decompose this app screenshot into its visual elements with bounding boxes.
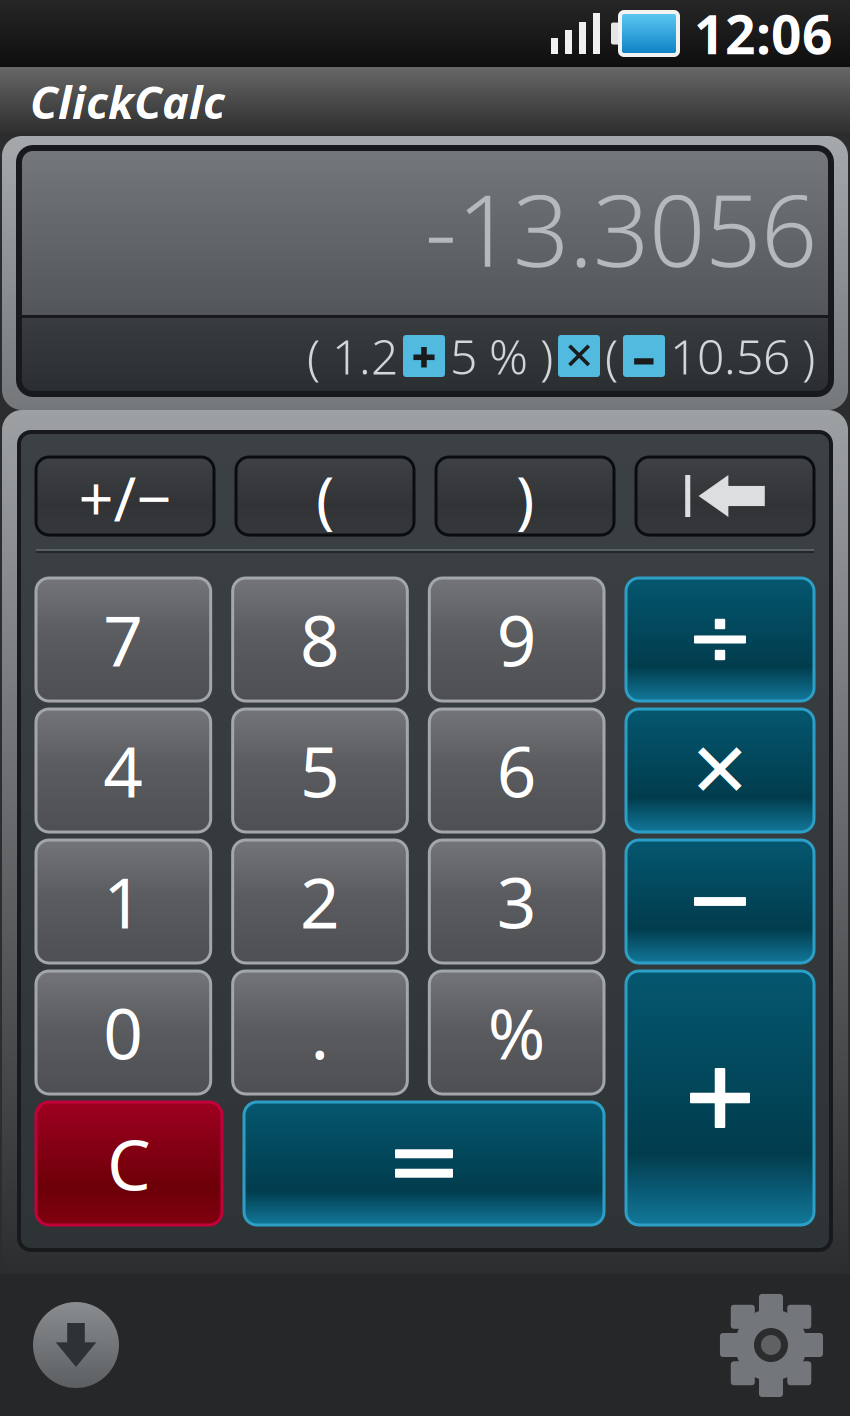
button[interactable]: Backspace (636, 457, 814, 535)
button[interactable]: 7 (36, 578, 211, 701)
staticText: ClickCalc (30, 71, 225, 132)
button[interactable]: 1 (36, 840, 211, 963)
staticText: – (632, 326, 655, 386)
staticText: 0 (103, 986, 143, 1079)
button[interactable]: Multiply (626, 709, 814, 832)
staticText: 1 (103, 855, 143, 948)
staticText: 6 (497, 724, 537, 817)
staticText: 2 (300, 855, 340, 948)
button[interactable]: 8 (233, 578, 407, 701)
button[interactable]: ( (236, 457, 414, 535)
staticText: 4 (103, 724, 143, 817)
button[interactable]: C (36, 1102, 222, 1225)
staticText: +/− (78, 457, 171, 535)
button[interactable]: Download (24, 1293, 128, 1397)
staticText: ✕ (688, 728, 751, 813)
button[interactable]: ) (436, 457, 614, 535)
button[interactable]: +/− (36, 457, 214, 535)
staticText: 8 (300, 593, 340, 686)
staticText: 10.56 ) (670, 324, 815, 388)
button[interactable]: Divide (626, 578, 814, 701)
staticText: 5 (300, 724, 340, 817)
button[interactable]: Settings (716, 1290, 826, 1400)
button[interactable]: 9 (429, 578, 604, 701)
staticText: ( (316, 457, 334, 535)
staticText: ✕ (563, 335, 594, 377)
staticText: + (411, 328, 436, 384)
button[interactable]: 3 (429, 840, 604, 963)
button[interactable]: 4 (36, 709, 211, 832)
button[interactable]: 6 (429, 709, 604, 832)
staticText: . (310, 986, 329, 1079)
button[interactable]: Plus (626, 971, 814, 1225)
staticText: C (107, 1117, 151, 1210)
button[interactable]: Equals (244, 1102, 604, 1225)
button[interactable]: % (429, 971, 604, 1094)
staticText: % (488, 986, 546, 1079)
button[interactable]: 2 (233, 840, 407, 963)
staticText: ) (516, 457, 534, 535)
staticText: ( 1.2 (307, 324, 398, 388)
staticText: -13.3056 (425, 163, 817, 294)
staticText: 5 % ) (450, 324, 553, 388)
button[interactable]: 0 (36, 971, 211, 1094)
staticText: 3 (497, 855, 537, 948)
button[interactable]: Minus (626, 840, 814, 963)
staticText: 9 (497, 593, 537, 686)
staticText: 7 (103, 593, 143, 686)
staticText: 12:06 (694, 0, 833, 69)
button[interactable]: . (233, 971, 407, 1094)
staticText: ( (605, 324, 618, 388)
button[interactable]: 5 (233, 709, 407, 832)
